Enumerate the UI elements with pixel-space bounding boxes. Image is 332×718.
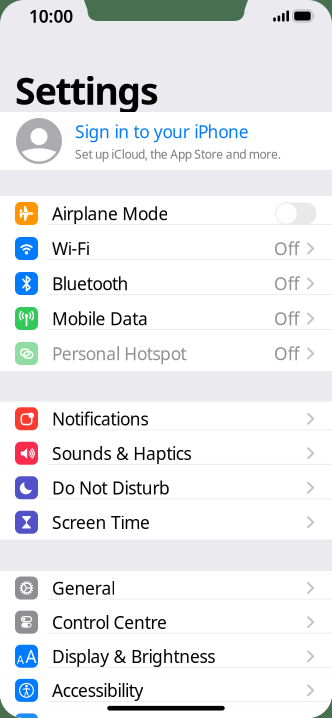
staticText: A [25, 645, 36, 668]
button[interactable]: Airplane Mode [0, 196, 332, 231]
button[interactable]: General [0, 571, 332, 605]
button[interactable]: Screen Time [0, 505, 332, 539]
button[interactable]: Notifications [0, 401, 332, 436]
staticText: General [52, 576, 115, 599]
staticText: Wi-Fi [52, 237, 90, 260]
button[interactable]: Mobile Data [0, 301, 332, 336]
button[interactable]: A [0, 639, 332, 673]
staticText: Set up iCloud, the App Store and more. [75, 146, 281, 162]
staticText: Airplane Mode [52, 202, 168, 225]
staticText: Off [274, 342, 299, 365]
staticText: Mobile Data [52, 307, 148, 330]
staticText: Sign in to your iPhone [75, 120, 249, 143]
staticText: Off [274, 307, 299, 330]
staticText: Personal Hotspot [52, 342, 186, 365]
button[interactable]: Control Centre [0, 605, 332, 639]
staticText: Notifications [52, 407, 148, 430]
staticText: Off [274, 237, 299, 260]
button[interactable]: Wi-Fi [0, 231, 332, 266]
staticText: Display & Brightness [52, 645, 215, 668]
staticText: Settings [15, 65, 159, 115]
staticText: Bluetooth [52, 272, 129, 295]
button[interactable]: Sign in to your iPhone [0, 112, 332, 170]
staticText: Off [274, 272, 299, 295]
staticText: Screen Time [52, 511, 150, 534]
staticText: Accessibility [52, 679, 143, 702]
staticText: Control Centre [52, 611, 167, 634]
staticText: Sounds & Haptics [52, 442, 191, 465]
button[interactable]: Do Not Disturb [0, 470, 332, 505]
button[interactable]: Sounds & Haptics [0, 436, 332, 470]
staticText: A [17, 652, 25, 668]
button[interactable]: Bluetooth [0, 266, 332, 301]
staticText: 10:00 [29, 4, 73, 27]
staticText: Do Not Disturb [52, 476, 170, 499]
button[interactable]: Personal Hotspot [0, 336, 332, 371]
button[interactable]: Accessibility [0, 673, 332, 707]
